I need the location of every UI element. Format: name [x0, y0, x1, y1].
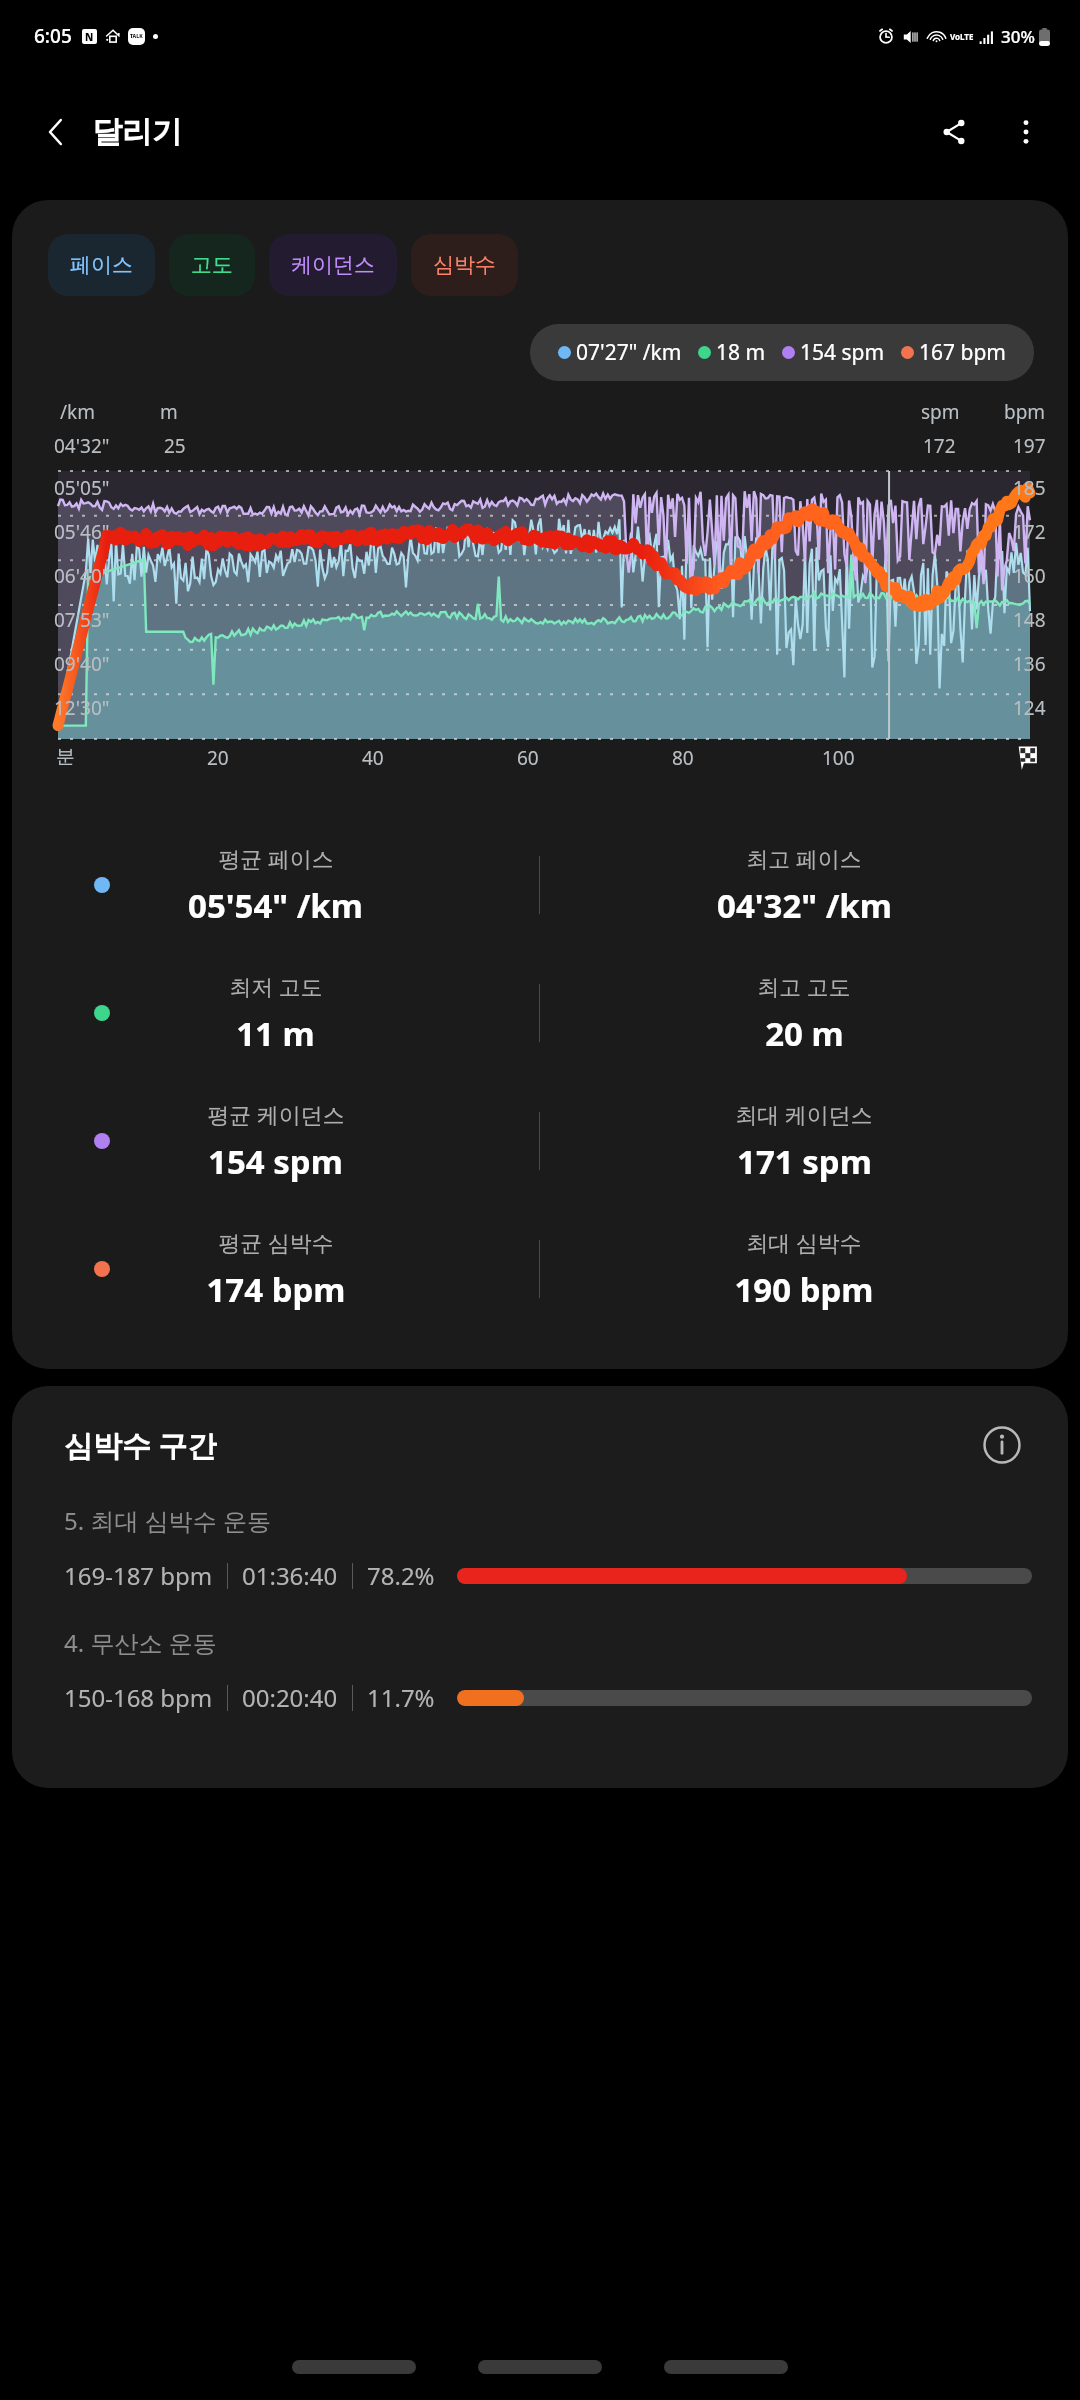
staticText: 167 bpm	[919, 338, 1006, 367]
staticText: bpm	[1004, 399, 1046, 425]
staticText: 04'32" /km	[717, 883, 892, 928]
staticText: 05'05"	[54, 475, 110, 501]
staticText: 07'27" /km	[576, 338, 682, 367]
button[interactable]: 4. 무산소 운동	[12, 1626, 1068, 1748]
staticText: 달리기	[92, 113, 182, 151]
staticText: 172	[923, 433, 956, 459]
staticText: 최고 페이스	[746, 843, 862, 873]
staticText: spm	[921, 399, 960, 425]
staticText: 06'40"	[54, 563, 110, 589]
staticText: 고도	[191, 252, 233, 278]
staticText: 11 m	[236, 1011, 315, 1056]
staticText: 190 bpm	[734, 1267, 874, 1312]
staticText: 4. 무산소 운동	[64, 1626, 217, 1659]
staticText: 11.7%	[367, 1681, 435, 1714]
staticText: 172	[1013, 519, 1046, 545]
staticText: 100	[822, 745, 855, 771]
staticText: 최저 고도	[229, 971, 323, 1001]
button[interactable]: 심박수	[411, 234, 518, 296]
button[interactable]: 케이던스	[269, 234, 397, 296]
button[interactable]: 5. 최대 심박수 운동	[12, 1504, 1068, 1626]
staticText: 07'53"	[54, 607, 110, 633]
staticText: 심박수	[433, 252, 496, 278]
staticText: 01:36:40	[242, 1559, 338, 1592]
button[interactable]: Home	[478, 2360, 602, 2374]
staticText: 169-187 bpm	[64, 1559, 213, 1592]
staticText: 최대 케이던스	[735, 1099, 873, 1129]
staticText: 케이던스	[291, 252, 375, 278]
staticText: 05'46"	[54, 519, 110, 545]
staticText: 6:05	[34, 23, 72, 49]
staticText: m	[160, 399, 178, 425]
staticText: 40	[362, 745, 384, 771]
button[interactable]: Back	[664, 2360, 788, 2374]
staticText: 124	[1013, 695, 1046, 721]
staticText: 20 m	[765, 1011, 844, 1056]
staticText: 20	[207, 745, 229, 771]
staticText: TALK	[130, 33, 143, 40]
staticText: 160	[1013, 563, 1046, 589]
staticText: VoLTE	[950, 31, 974, 42]
staticText: 154 spm	[208, 1139, 343, 1184]
staticText: 05'54" /km	[188, 883, 363, 928]
staticText: 60	[517, 745, 539, 771]
staticText: 78.2%	[367, 1559, 435, 1592]
staticText: 80	[672, 745, 694, 771]
staticText: 12'30"	[54, 695, 110, 721]
staticText: 154 spm	[800, 338, 885, 367]
button[interactable]: Share	[918, 96, 990, 168]
staticText: N	[85, 30, 94, 44]
staticText: 18 m	[716, 338, 766, 367]
staticText: 30%	[1001, 25, 1035, 48]
staticText: 평균 케이던스	[207, 1099, 345, 1129]
button[interactable]: More options	[990, 96, 1062, 168]
staticText: /km	[60, 399, 95, 425]
staticText: 분	[56, 745, 75, 769]
staticText: 평균 페이스	[218, 843, 334, 873]
staticText: 평균 심박수	[218, 1227, 334, 1257]
staticText: 09'40"	[54, 651, 110, 677]
button[interactable]: Information	[972, 1415, 1032, 1475]
staticText: 00:20:40	[242, 1681, 338, 1714]
staticText: 174 bpm	[206, 1267, 346, 1312]
staticText: 페이스	[70, 252, 133, 278]
staticText: 최대 심박수	[746, 1227, 862, 1257]
button[interactable]: Back	[20, 96, 92, 168]
button[interactable]: 페이스	[48, 234, 155, 296]
staticText: 171 spm	[737, 1139, 872, 1184]
staticText: 136	[1013, 651, 1046, 677]
button[interactable]: Recents	[292, 2360, 416, 2374]
staticText: 197	[1013, 433, 1046, 459]
staticText: 심박수 구간	[64, 1425, 217, 1465]
staticText: 25	[164, 433, 186, 459]
staticText: 185	[1013, 475, 1046, 501]
staticText: 최고 고도	[757, 971, 851, 1001]
staticText: 148	[1013, 607, 1046, 633]
staticText: 04'32"	[54, 433, 110, 459]
staticText: 5. 최대 심박수 운동	[64, 1504, 271, 1537]
staticText: 150-168 bpm	[64, 1681, 213, 1714]
button[interactable]: 고도	[169, 234, 255, 296]
